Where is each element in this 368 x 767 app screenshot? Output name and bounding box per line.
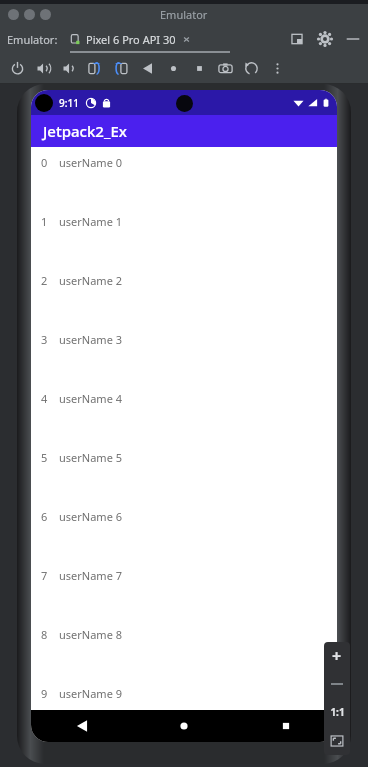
staticText: Jetpack2_Ex — [43, 121, 127, 141]
button[interactable]: Home — [133, 710, 235, 742]
staticText: userName 6 — [59, 509, 122, 524]
button[interactable]: Overview — [186, 55, 212, 81]
button[interactable]: 1:1 — [324, 698, 350, 726]
staticText: 9 — [41, 686, 59, 701]
button[interactable]: 8 — [31, 627, 337, 686]
button[interactable]: 5 — [31, 450, 337, 509]
staticText: 2 — [41, 273, 59, 288]
staticText: 0 — [41, 155, 59, 170]
button[interactable]: Toggle panel — [288, 30, 306, 48]
staticText: + — [332, 645, 342, 667]
button[interactable]: 4 — [31, 391, 337, 450]
staticText: Emulator: — [7, 32, 58, 47]
button[interactable]: More — [264, 55, 290, 81]
button[interactable]: 3 — [31, 332, 337, 391]
staticText: 4 — [41, 391, 59, 406]
button[interactable]: 6 — [31, 509, 337, 568]
button[interactable]: Rotate history — [238, 55, 264, 81]
staticText: 7 — [41, 568, 59, 583]
button[interactable]: Volume up — [30, 55, 56, 81]
staticText: userName 9 — [59, 686, 122, 701]
staticText: 3 — [41, 332, 59, 347]
staticText: userName 0 — [59, 155, 122, 170]
button[interactable] — [40, 9, 51, 20]
button[interactable]: Volume down — [56, 55, 82, 81]
staticText: 1:1 — [330, 705, 345, 719]
button[interactable]: Screenshot — [212, 55, 238, 81]
staticText: userName 4 — [59, 391, 122, 406]
staticText: userName 7 — [59, 568, 122, 583]
button[interactable]: Zoom out — [324, 670, 350, 698]
button[interactable]: Overview — [235, 710, 337, 742]
button[interactable] — [24, 9, 35, 20]
staticText: userName 5 — [59, 450, 122, 465]
button[interactable]: Pixel 6 Pro API 30 — [70, 32, 192, 47]
button[interactable]: Minimize — [344, 30, 362, 48]
staticText: userName 1 — [59, 214, 122, 229]
staticText: 6 — [41, 509, 59, 524]
staticText: 1 — [41, 214, 59, 229]
button[interactable]: 2 — [31, 273, 337, 332]
button[interactable]: 9 — [31, 686, 337, 710]
staticText: Pixel 6 Pro API 30 — [86, 32, 176, 47]
button[interactable]: Power — [4, 55, 30, 81]
button[interactable]: Home — [160, 55, 186, 81]
button[interactable]: Back — [31, 710, 133, 742]
staticText: userName 2 — [59, 273, 122, 288]
staticText: userName 3 — [59, 332, 122, 347]
button[interactable]: Close tab — [181, 34, 192, 45]
button[interactable]: Settings — [316, 30, 334, 48]
button[interactable]: Rotate left — [82, 55, 108, 81]
staticText: 8 — [41, 627, 59, 642]
staticText: Emulator — [160, 7, 208, 22]
button[interactable]: 1 — [31, 214, 337, 273]
button[interactable]: Zoom in — [324, 642, 350, 670]
button[interactable]: 7 — [31, 568, 337, 627]
button[interactable] — [8, 9, 19, 20]
button[interactable]: 0 — [31, 155, 337, 214]
staticText: 5 — [41, 450, 59, 465]
button[interactable]: Fit to screen — [324, 726, 350, 755]
staticText: 9:11 — [59, 96, 79, 110]
staticText: userName 8 — [59, 627, 122, 642]
button[interactable]: Rotate right — [108, 55, 134, 81]
button[interactable]: Back — [134, 55, 160, 81]
